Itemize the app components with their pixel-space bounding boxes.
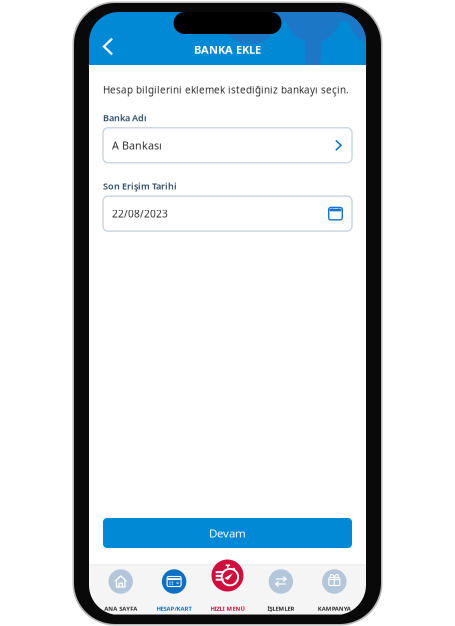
button[interactable]: KAMPANYA <box>308 568 361 612</box>
button[interactable]: Back <box>89 12 127 65</box>
staticText: İŞLEMLER <box>267 604 294 612</box>
button[interactable]: HESAP/KART <box>147 568 201 612</box>
staticText: HESAP/KART <box>157 604 192 612</box>
button[interactable]: HIZLI MENÜ <box>201 568 254 612</box>
staticText: HIZLI MENÜ <box>210 604 244 612</box>
staticText: BANKA EKLE <box>194 42 261 57</box>
button[interactable]: ANA SAYFA <box>94 568 147 612</box>
staticText: ANA SAYFA <box>104 604 137 612</box>
staticText: Son Erişim Tarihi <box>103 180 177 192</box>
button[interactable]: 22/08/2023 <box>103 196 352 231</box>
button[interactable]: İŞLEMLER <box>254 568 308 612</box>
button[interactable]: A Bankası <box>103 128 352 163</box>
staticText: KAMPANYA <box>318 604 351 612</box>
staticText: A Bankası <box>112 138 162 152</box>
staticText: 22/08/2023 <box>112 207 168 220</box>
staticText: Devam <box>209 525 246 541</box>
staticText: Hesap bilgilerini eklemek istediğiniz ba… <box>103 83 349 96</box>
button[interactable]: Devam <box>103 518 352 548</box>
staticText: Banka Adı <box>103 111 147 124</box>
